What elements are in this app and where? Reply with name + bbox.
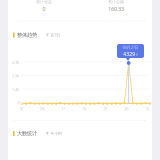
staticText: 累计收益 [36,0,52,4]
staticText: 26 [124,106,128,111]
staticText: 06 [40,106,44,111]
staticText: 0 [17,100,19,105]
staticText: 2.9k [12,73,19,78]
staticText: 4.3k [12,60,19,65]
staticText: 06月27日 [122,45,138,50]
staticText: 今小时 [50,131,62,136]
staticText: 累计金额 [108,0,124,4]
staticText: 31 [146,106,150,111]
staticText: 160.33 [108,5,124,12]
staticText: 01 [19,106,23,111]
staticText: 近7日 [50,32,60,38]
staticText: 4329 › [123,50,138,57]
staticText: 1.4k [12,87,19,92]
staticText: 0 [42,5,45,12]
staticText: 16 [82,106,86,111]
staticText: 21 [104,106,108,111]
staticText: 整体趋势 [17,32,37,38]
staticText: 11 [62,106,66,111]
staticText: 大数统计 [17,130,37,137]
